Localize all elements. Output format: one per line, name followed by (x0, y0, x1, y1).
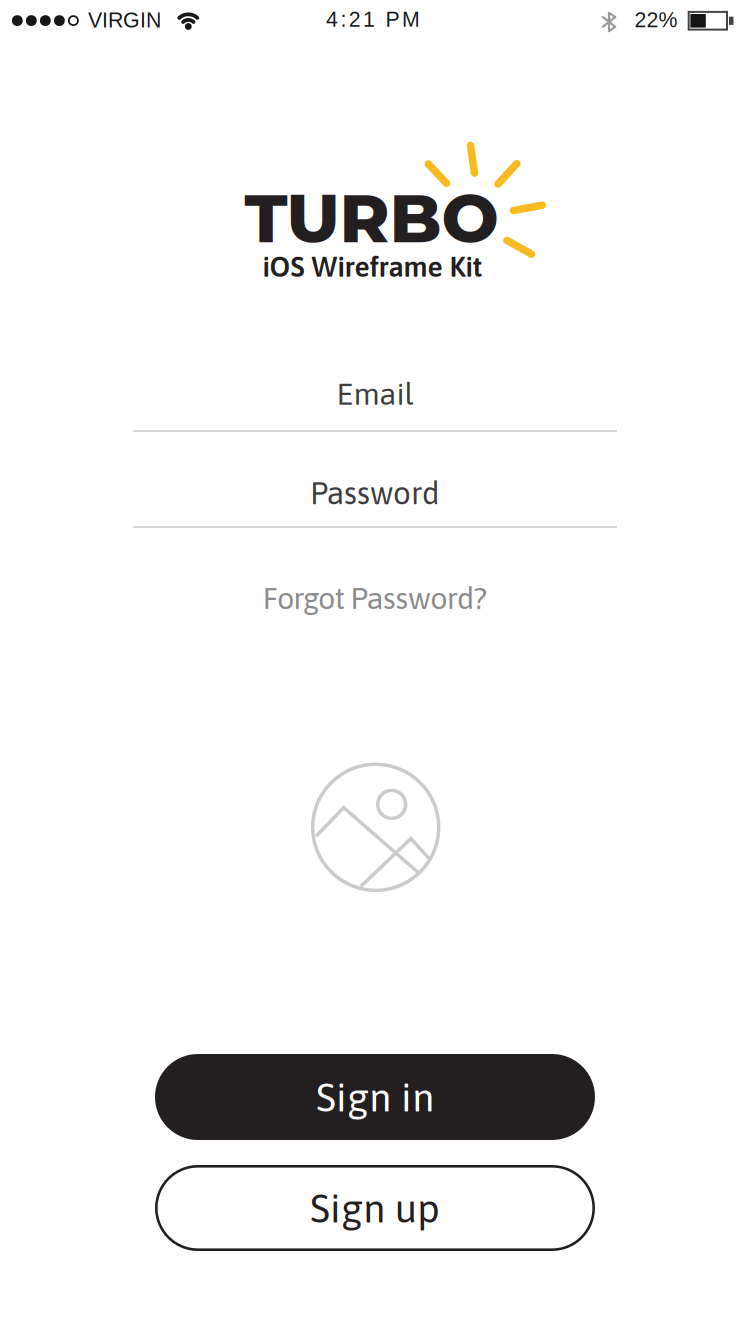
staticText: 22% (634, 8, 677, 32)
staticText: Password (310, 475, 440, 511)
staticText: TURBO (244, 177, 498, 259)
staticText: Sign in (316, 1074, 434, 1120)
button[interactable]: Sign up (155, 1165, 595, 1251)
button[interactable]: Sign in (155, 1054, 595, 1140)
button[interactable]: Email (133, 376, 617, 432)
staticText: Forgot Password? (262, 580, 487, 615)
button[interactable]: Password (133, 475, 617, 531)
staticText: VIRGIN (88, 8, 161, 32)
button[interactable]: Forgot Password? (262, 580, 487, 615)
staticText: Sign up (310, 1185, 440, 1231)
staticText: 4:21 PM (326, 7, 420, 31)
staticText: Email (336, 376, 413, 411)
staticText: iOS Wireframe Kit (262, 250, 482, 283)
